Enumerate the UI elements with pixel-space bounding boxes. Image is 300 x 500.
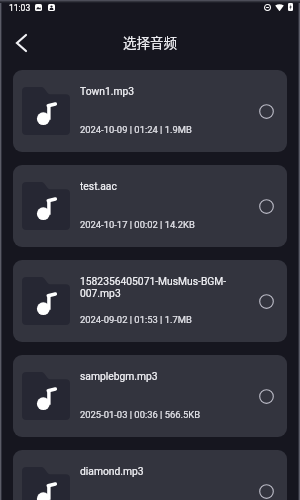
staticText: 选择音频 bbox=[123, 32, 177, 52]
staticText: 2024-10-17 | 00:02 | 14.2KB bbox=[80, 219, 195, 230]
button[interactable]: samplebgm.mp3 bbox=[13, 355, 287, 437]
staticText: diamond.mp3 bbox=[80, 465, 144, 477]
staticText: 1582356405071-MusMus-BGM- 007.mp3 bbox=[80, 275, 227, 300]
button[interactable]: Select audio bbox=[251, 286, 281, 316]
staticText: 2024-10-09 | 01:24 | 1.9MB bbox=[80, 124, 192, 135]
staticText: 11:03 bbox=[9, 3, 31, 13]
button[interactable]: Town1.mp3 bbox=[13, 70, 287, 152]
button[interactable]: Select audio bbox=[251, 96, 281, 126]
button[interactable]: Select audio bbox=[251, 191, 281, 221]
button[interactable]: Select audio bbox=[251, 381, 281, 411]
button[interactable]: 1582356405071-MusMus-BGM- 007.mp3 bbox=[13, 260, 287, 342]
button[interactable]: test.aac bbox=[13, 165, 287, 247]
button[interactable]: Back bbox=[9, 30, 34, 55]
staticText: samplebgm.mp3 bbox=[80, 370, 158, 382]
staticText: 2025-01-03 | 00:36 | 566.5KB bbox=[80, 409, 201, 420]
staticText: test.aac bbox=[80, 180, 117, 192]
staticText: Town1.mp3 bbox=[80, 85, 135, 97]
button[interactable]: Select audio bbox=[251, 476, 281, 500]
button[interactable]: diamond.mp3 bbox=[13, 450, 287, 500]
staticText: 2024-09-02 | 01:53 | 1.7MB bbox=[80, 314, 192, 325]
